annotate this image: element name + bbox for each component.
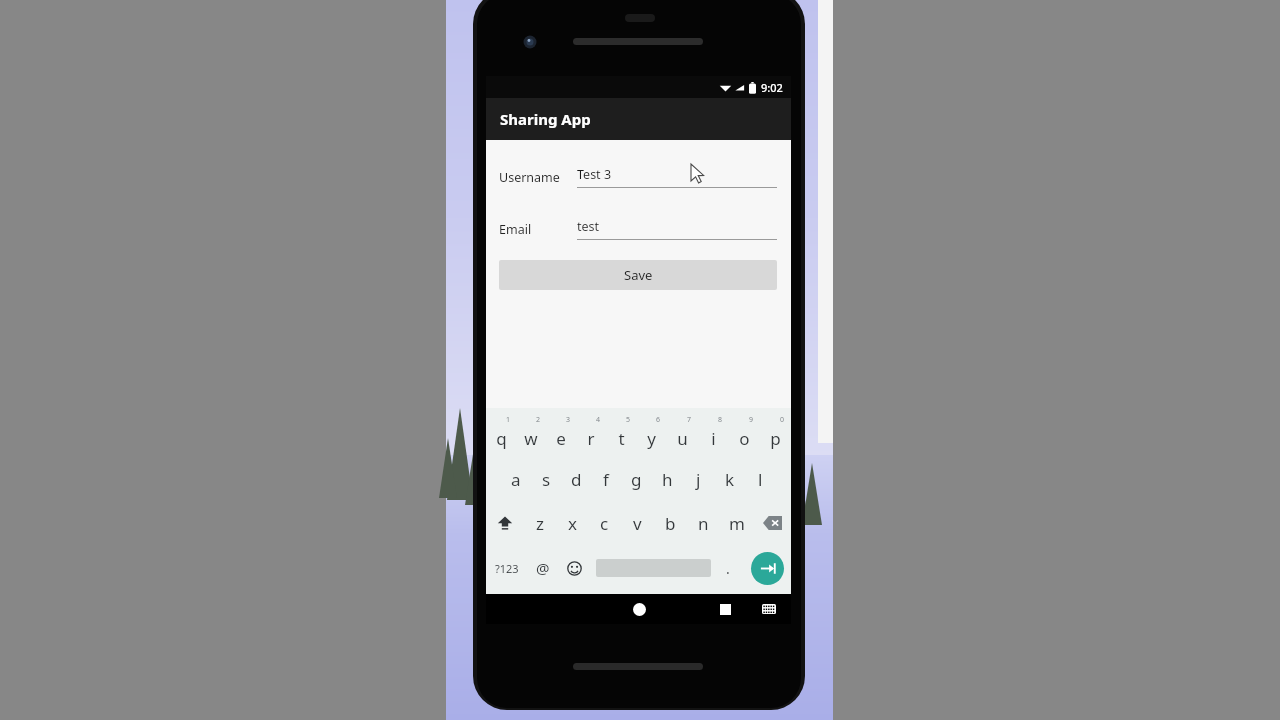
button[interactable]: Save <box>499 260 777 290</box>
staticText: 4 <box>596 415 601 425</box>
button[interactable]: l <box>745 458 776 500</box>
staticText: j <box>696 468 701 491</box>
button[interactable]: 0 <box>760 414 791 456</box>
staticText: Test 3 <box>577 166 612 183</box>
button[interactable]: g <box>621 458 652 500</box>
staticText: u <box>677 427 688 450</box>
button[interactable]: Sharing App <box>486 98 791 140</box>
staticText: o <box>739 427 750 450</box>
staticText: t <box>618 427 625 450</box>
button[interactable]: b <box>654 502 687 544</box>
staticText: c <box>600 512 609 535</box>
button[interactable]: 2 <box>516 414 546 456</box>
staticText: d <box>571 468 582 491</box>
staticText: k <box>725 468 735 491</box>
staticText: v <box>633 512 642 535</box>
button[interactable]: 9 <box>729 414 760 456</box>
button[interactable]: n <box>687 502 720 544</box>
button[interactable]: @ <box>528 546 558 590</box>
staticText: w <box>524 427 538 450</box>
button[interactable]: Home <box>624 594 654 624</box>
button[interactable]: Recent apps <box>710 594 740 624</box>
staticText: x <box>568 512 577 535</box>
button[interactable]: j <box>683 458 714 500</box>
button[interactable]: Backspace <box>753 502 791 544</box>
staticText: p <box>770 427 781 450</box>
staticText: i <box>711 427 716 450</box>
button[interactable]: 7 <box>667 414 698 456</box>
button[interactable]: d <box>561 458 591 500</box>
button[interactable]: Username <box>499 160 777 194</box>
staticText: m <box>729 512 745 535</box>
staticText: 0 <box>780 415 785 425</box>
staticText: g <box>631 468 642 491</box>
button[interactable]: Switch keyboard <box>754 594 784 624</box>
staticText: test <box>577 218 600 235</box>
button[interactable]: k <box>714 458 745 500</box>
staticText: 8 <box>718 415 723 425</box>
staticText: 2 <box>536 415 541 425</box>
staticText: n <box>698 512 709 535</box>
button[interactable]: Shift <box>486 502 524 544</box>
staticText: y <box>647 427 656 450</box>
staticText: z <box>536 512 544 535</box>
staticText: s <box>542 468 551 491</box>
button[interactable]: Enter <box>745 546 789 590</box>
staticText: 3 <box>566 415 571 425</box>
staticText: Email <box>499 221 577 238</box>
button[interactable]: a <box>501 458 531 500</box>
staticText: l <box>758 468 763 491</box>
button[interactable]: 4 <box>576 414 606 456</box>
button[interactable]: 6 <box>636 414 667 456</box>
staticText: 5 <box>626 415 631 425</box>
staticText: . <box>726 559 730 578</box>
staticText: r <box>587 427 595 450</box>
staticText: f <box>603 468 609 491</box>
button[interactable]: h <box>652 458 683 500</box>
staticText: Username <box>499 169 577 186</box>
button[interactable]: ?123 <box>486 546 528 590</box>
staticText: 9 <box>749 415 754 425</box>
staticText: a <box>511 468 521 491</box>
staticText: e <box>556 427 566 450</box>
staticText: b <box>665 512 676 535</box>
button[interactable]: x <box>556 502 588 544</box>
button[interactable]: 1 <box>486 414 516 456</box>
staticText: h <box>662 468 673 491</box>
button[interactable]: z <box>524 502 556 544</box>
button[interactable]: 5 <box>606 414 636 456</box>
staticText: @ <box>536 558 550 578</box>
button[interactable]: v <box>621 502 654 544</box>
staticText: 7 <box>687 415 692 425</box>
staticText: Sharing App <box>500 109 591 129</box>
button[interactable]: . <box>711 546 745 590</box>
button[interactable]: s <box>531 458 561 500</box>
button[interactable]: 3 <box>546 414 576 456</box>
staticText: q <box>496 427 507 450</box>
staticText: 1 <box>506 415 511 425</box>
button[interactable]: c <box>588 502 621 544</box>
button[interactable]: Email <box>499 212 777 246</box>
button[interactable]: f <box>591 458 621 500</box>
staticText: Save <box>624 266 653 284</box>
button[interactable]: Emoji <box>558 546 590 590</box>
staticText: 9:02 <box>761 80 783 95</box>
button[interactable]: m <box>720 502 753 544</box>
button[interactable]: 8 <box>698 414 729 456</box>
staticText: ?123 <box>495 561 519 576</box>
staticText: 6 <box>656 415 661 425</box>
